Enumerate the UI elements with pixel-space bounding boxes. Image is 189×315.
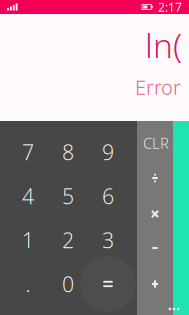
button[interactable]: Subtract [137,230,173,265]
staticText: CLR [143,133,169,153]
button[interactable]: . [8,262,48,306]
button[interactable]: 0 [48,262,88,306]
button[interactable]: 8 [48,130,88,174]
button[interactable]: 2 [48,218,88,262]
button[interactable]: Divide [137,160,173,195]
button[interactable]: 3 [88,218,128,262]
staticText: 8 [62,138,74,166]
staticText: 5 [62,182,74,210]
staticText: 4 [22,182,34,210]
staticText: . [25,270,30,298]
button[interactable]: CLR [138,125,174,160]
button[interactable]: Add [137,266,173,301]
staticText: 9 [102,138,114,166]
staticText: 1 [22,226,34,254]
button[interactable]: 6 [88,174,128,218]
button[interactable]: Equals [88,262,128,306]
staticText: Error [135,74,181,100]
button[interactable]: 9 [88,130,128,174]
button[interactable]: 5 [48,174,88,218]
staticText: 2:17 [158,0,182,15]
button[interactable]: 7 [8,130,48,174]
button[interactable]: More options [163,302,185,315]
staticText: 0 [62,270,74,298]
button[interactable]: 1 [8,218,48,262]
staticText: 6 [102,182,114,210]
button[interactable]: 4 [8,174,48,218]
button[interactable]: Multiply [137,196,173,231]
staticText: 2 [62,226,74,254]
staticText: 3 [102,226,114,254]
staticText: 7 [22,138,34,166]
staticText: ln( [145,23,182,67]
